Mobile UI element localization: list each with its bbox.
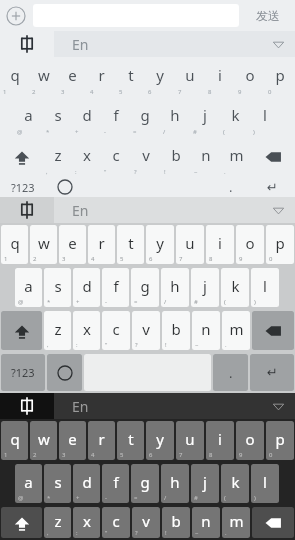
button[interactable]: Symbols: [0, 352, 46, 393]
button[interactable]: Backspace: [251, 137, 295, 177]
button[interactable]: t: [116, 419, 145, 462]
button[interactable]: q: [0, 57, 29, 97]
button[interactable]: z: [43, 309, 72, 352]
button[interactable]: f: [101, 266, 130, 309]
button[interactable]: g: [130, 97, 160, 137]
button[interactable]: w: [29, 419, 58, 462]
button[interactable]: d: [72, 266, 101, 309]
button[interactable]: y: [145, 57, 175, 97]
button[interactable]: i: [205, 223, 235, 266]
button[interactable]: m: [221, 309, 251, 352]
button[interactable]: a: [14, 462, 43, 505]
button[interactable]: z: [43, 505, 72, 540]
button[interactable]: k: [220, 462, 250, 505]
button[interactable]: x: [72, 505, 101, 540]
button[interactable]: b: [161, 137, 191, 177]
button[interactable]: n: [191, 137, 221, 177]
button[interactable]: z: [43, 137, 72, 177]
button[interactable]: y: [145, 223, 175, 266]
button[interactable]: Emoji: [46, 177, 83, 197]
button[interactable]: g: [130, 462, 160, 505]
button[interactable]: En: [72, 393, 261, 419]
button[interactable]: e: [58, 419, 87, 462]
button[interactable]: s: [43, 266, 72, 309]
button[interactable]: e: [58, 57, 87, 97]
button[interactable]: Collapse keyboard: [261, 197, 295, 223]
button[interactable]: k: [220, 97, 250, 137]
button[interactable]: e: [58, 223, 87, 266]
button[interactable]: a: [14, 97, 43, 137]
button[interactable]: Shift: [0, 309, 43, 352]
button[interactable]: t: [116, 223, 145, 266]
button[interactable]: y: [145, 419, 175, 462]
button[interactable]: t: [116, 57, 145, 97]
button[interactable]: a: [14, 266, 43, 309]
button[interactable]: u: [175, 223, 205, 266]
button[interactable]: b: [161, 309, 191, 352]
button[interactable]: x: [72, 309, 101, 352]
button[interactable]: x: [72, 137, 101, 177]
button[interactable]: Backspace: [251, 505, 295, 540]
button[interactable]: Collapse keyboard: [261, 393, 295, 419]
button[interactable]: En: [72, 197, 261, 223]
button[interactable]: q: [0, 223, 29, 266]
button[interactable]: Space: [83, 352, 212, 393]
button[interactable]: u: [175, 419, 205, 462]
button[interactable]: v: [131, 309, 161, 352]
button[interactable]: Period: [212, 352, 249, 393]
button[interactable]: s: [43, 462, 72, 505]
button[interactable]: Symbols: [0, 177, 46, 197]
button[interactable]: l: [250, 97, 280, 137]
button[interactable]: f: [101, 97, 130, 137]
button[interactable]: w: [29, 57, 58, 97]
button[interactable]: s: [43, 97, 72, 137]
button[interactable]: h: [160, 97, 190, 137]
button[interactable]: n: [191, 505, 221, 540]
button[interactable]: r: [87, 57, 116, 97]
button[interactable]: o: [235, 223, 265, 266]
button[interactable]: j: [190, 97, 220, 137]
button[interactable]: n: [191, 309, 221, 352]
button[interactable]: p: [265, 419, 295, 462]
button[interactable]: 发送: [246, 4, 290, 27]
button[interactable]: Chinese input: [0, 31, 54, 57]
button[interactable]: b: [161, 505, 191, 540]
button[interactable]: En: [72, 31, 261, 57]
button[interactable]: w: [29, 223, 58, 266]
button[interactable]: r: [87, 419, 116, 462]
button[interactable]: l: [250, 266, 280, 309]
button[interactable]: Emoji: [46, 352, 83, 393]
button[interactable]: c: [101, 137, 131, 177]
button[interactable]: q: [0, 419, 29, 462]
button[interactable]: d: [72, 97, 101, 137]
button[interactable]: Enter: [249, 177, 295, 197]
button[interactable]: j: [190, 462, 220, 505]
button[interactable]: u: [175, 57, 205, 97]
button[interactable]: Enter: [249, 352, 295, 393]
button[interactable]: Chinese input: [0, 197, 54, 223]
button[interactable]: m: [221, 505, 251, 540]
button[interactable]: h: [160, 462, 190, 505]
button[interactable]: h: [160, 266, 190, 309]
button[interactable]: Shift: [0, 137, 43, 177]
button[interactable]: Period: [212, 177, 249, 197]
button[interactable]: d: [72, 462, 101, 505]
button[interactable]: p: [265, 223, 295, 266]
button[interactable]: v: [131, 137, 161, 177]
button[interactable]: j: [190, 266, 220, 309]
button[interactable]: Add attachment: [5, 5, 27, 27]
button[interactable]: p: [265, 57, 295, 97]
button[interactable]: Shift: [0, 505, 43, 540]
button[interactable]: o: [235, 57, 265, 97]
button[interactable]: Backspace: [251, 309, 295, 352]
button[interactable]: i: [205, 57, 235, 97]
button[interactable]: l: [250, 462, 280, 505]
button[interactable]: c: [101, 309, 131, 352]
button[interactable]: r: [87, 223, 116, 266]
button[interactable]: f: [101, 462, 130, 505]
button[interactable]: v: [131, 505, 161, 540]
button[interactable]: o: [235, 419, 265, 462]
button[interactable]: i: [205, 419, 235, 462]
